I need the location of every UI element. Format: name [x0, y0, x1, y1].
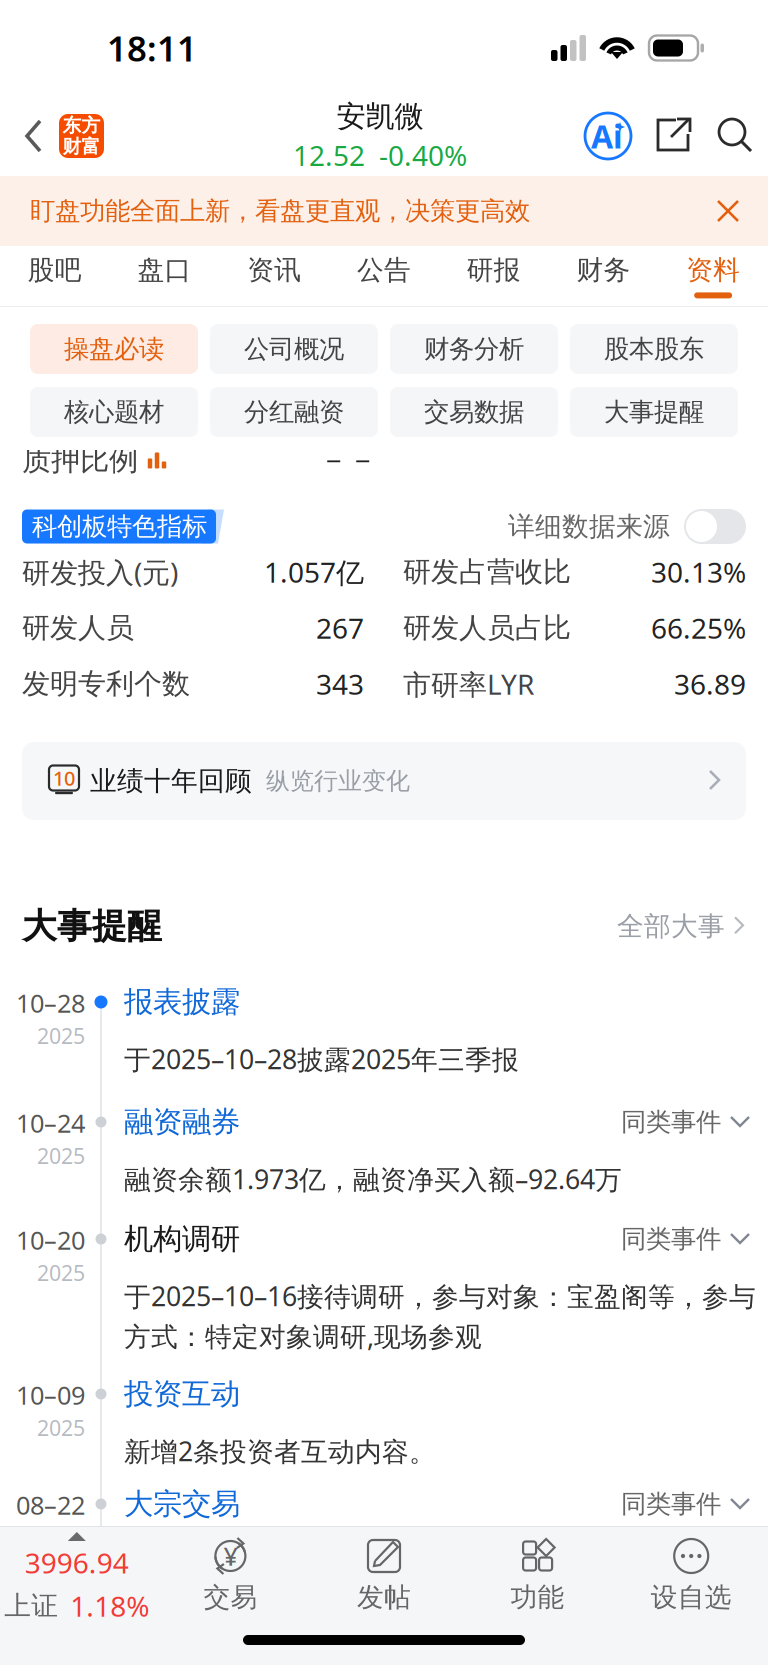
button[interactable]: 返回: [0, 96, 112, 176]
staticText: 股本股东: [604, 333, 704, 364]
staticText: 同类事件: [621, 1223, 721, 1254]
button[interactable]: 同类事件: [621, 1106, 768, 1137]
button[interactable]: 3996.94: [0, 1527, 154, 1665]
button[interactable]: 公告: [329, 246, 439, 306]
staticText: 盘口: [138, 254, 192, 286]
staticText: 2025: [37, 1414, 85, 1442]
staticText: 上证: [4, 1589, 58, 1622]
staticText: 交易: [203, 1581, 257, 1614]
staticText: 10–28: [16, 986, 85, 1020]
staticText: 操盘必读: [64, 333, 164, 364]
staticText: 功能: [511, 1581, 565, 1614]
button[interactable]: 财务分析: [390, 324, 558, 374]
staticText: 267: [316, 609, 364, 647]
staticText: 财务分析: [424, 333, 524, 364]
staticText: 质押比例: [22, 442, 138, 478]
staticText: 分红融资: [244, 396, 344, 427]
button[interactable]: 盘口: [110, 246, 219, 306]
staticText: 融资融券: [124, 1104, 240, 1140]
staticText: 投资互动: [124, 1376, 240, 1412]
staticText: 66.25%: [651, 609, 746, 647]
button[interactable]: 分享: [654, 116, 694, 156]
button[interactable]: 股吧: [0, 246, 110, 306]
button[interactable]: 搜索: [716, 116, 756, 156]
staticText: 机构调研: [124, 1221, 240, 1257]
staticText: 公告: [357, 254, 411, 286]
button[interactable]: AI 助手: [584, 112, 632, 160]
staticText: Ai: [591, 115, 623, 157]
staticText: 08–22: [16, 1488, 85, 1522]
staticText: 1.057亿: [264, 553, 364, 591]
staticText: 12.52: [293, 136, 365, 174]
staticText: 资讯: [247, 254, 301, 286]
staticText: 研发人员: [22, 611, 134, 645]
staticText: 研发投入(元): [22, 553, 178, 591]
staticText: 2025: [37, 1524, 85, 1552]
staticText: 大事提醒: [22, 905, 162, 948]
button[interactable]: 交易数据: [390, 387, 558, 437]
staticText: 于2025–10–28披露2025年三季报: [124, 1041, 519, 1077]
staticText: 业绩十年回顾: [90, 765, 252, 797]
staticText: 设自选: [651, 1581, 732, 1614]
staticText: 2025: [37, 1142, 85, 1170]
button[interactable]: 操盘必读: [30, 324, 198, 374]
staticText: 核心题材: [64, 396, 164, 427]
button[interactable]: 资料: [658, 246, 768, 306]
staticText: 于2025–10–16接待调研，参与对象：宝盈阁等，参与: [124, 1278, 756, 1314]
staticText: 交易数据: [424, 396, 524, 427]
button[interactable]: 研报: [439, 246, 549, 306]
staticText: 详细数据来源: [508, 510, 670, 543]
button[interactable]: 财务: [549, 246, 658, 306]
staticText: 10–09: [16, 1378, 85, 1412]
staticText: 融资余额1.973亿，融资净买入额–92.64万: [124, 1161, 622, 1197]
staticText: 报表披露: [124, 984, 240, 1020]
staticText: 资料: [686, 254, 740, 286]
button[interactable]: 设自选: [614, 1527, 768, 1665]
staticText: 纵览行业变化: [266, 766, 410, 796]
button[interactable]: 分红融资: [210, 387, 378, 437]
staticText: 东方: [62, 114, 100, 137]
staticText: 30.13%: [651, 553, 746, 591]
button[interactable]: 公司概况: [210, 324, 378, 374]
staticText: 方式：特定对象调研,现场参观: [124, 1318, 482, 1354]
staticText: 大事提醒: [604, 396, 704, 427]
staticText: 科创板特色指标: [32, 511, 207, 542]
staticText: 10–20: [16, 1223, 85, 1257]
staticText: 36.89: [674, 665, 746, 703]
staticText: 2025: [37, 1022, 85, 1050]
staticText: ¥: [223, 1539, 237, 1573]
staticText: 盯盘功能全面上新，看盘更直观，决策更高效: [30, 195, 530, 226]
button[interactable]: 同类事件: [621, 1223, 768, 1254]
button[interactable]: ¥: [154, 1527, 307, 1665]
staticText: 财务: [576, 254, 630, 286]
staticText: 市研率LYR: [403, 665, 534, 703]
button[interactable]: 股本股东: [570, 324, 738, 374]
staticText: 18:11: [107, 25, 197, 71]
button[interactable]: 资讯: [219, 246, 329, 306]
staticText: 安凯微: [336, 98, 423, 134]
staticText: 大宗交易: [124, 1486, 240, 1522]
staticText: 1.18%: [70, 1587, 149, 1624]
button[interactable]: 同类事件: [621, 1488, 768, 1519]
staticText: 全部大事: [617, 910, 725, 943]
button[interactable]: 大事提醒: [570, 387, 738, 437]
staticText: -0.40%: [379, 136, 467, 174]
button[interactable]: 核心题材: [30, 387, 198, 437]
staticText: 研报: [467, 254, 521, 286]
staticText: 同类事件: [621, 1488, 721, 1519]
button[interactable]: 全部大事: [617, 910, 746, 943]
staticText: 新增2条投资者互动内容。: [124, 1433, 436, 1469]
staticText: 2025: [37, 1259, 85, 1287]
staticText: 股吧: [28, 254, 82, 286]
staticText: －－: [319, 442, 377, 478]
button[interactable]: 详细数据来源开关: [670, 509, 746, 544]
staticText: 3996.94: [25, 1544, 129, 1581]
staticText: 发明专利个数: [22, 667, 190, 701]
staticText: 研发占营收比: [403, 555, 571, 589]
button[interactable]: 10: [0, 742, 768, 820]
staticText: 同类事件: [621, 1106, 721, 1137]
button[interactable]: 关闭: [702, 176, 768, 246]
button[interactable]: 发帖: [307, 1527, 461, 1665]
staticText: 10–24: [16, 1106, 85, 1140]
button[interactable]: 功能: [461, 1527, 614, 1665]
